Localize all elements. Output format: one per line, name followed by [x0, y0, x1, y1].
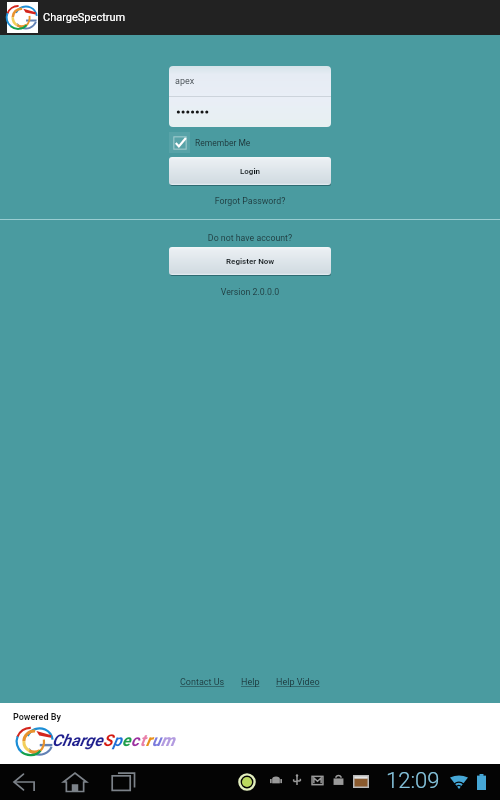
button[interactable]: Register Now: [169, 247, 331, 275]
staticText: ChargeSpectrum: [43, 11, 126, 24]
button[interactable]: apex: [169, 66, 331, 96]
button[interactable]: Recent apps: [105, 768, 141, 796]
staticText: Forgot Password?: [0, 196, 500, 206]
button[interactable]: Contact Us: [180, 677, 225, 688]
staticText: Version 2.0.0.0: [0, 287, 500, 297]
staticText: t: [140, 731, 146, 750]
staticText: apex: [175, 76, 195, 87]
button[interactable]: Login: [169, 157, 331, 185]
button[interactable]: Help Video: [276, 677, 320, 688]
staticText: Powered By: [13, 712, 61, 723]
staticText: c: [131, 731, 140, 750]
staticText: u: [152, 731, 161, 750]
staticText: Do not have account?: [0, 233, 500, 243]
button[interactable]: Remember Me: [169, 132, 251, 153]
staticText: Charge: [52, 731, 103, 750]
staticText: m: [161, 731, 175, 750]
staticText: p: [113, 731, 122, 750]
staticText: e: [122, 731, 131, 750]
staticText: Remember Me: [195, 138, 251, 148]
button[interactable]: Home: [57, 768, 93, 796]
button[interactable]: [169, 97, 331, 127]
staticText: Login: [240, 167, 261, 176]
staticText: 12:09: [386, 768, 440, 794]
button[interactable]: Back: [6, 768, 44, 796]
staticText: Register Now: [226, 257, 275, 266]
button[interactable]: Help: [241, 677, 260, 688]
staticText: S: [103, 731, 113, 750]
staticText: r: [146, 731, 152, 750]
